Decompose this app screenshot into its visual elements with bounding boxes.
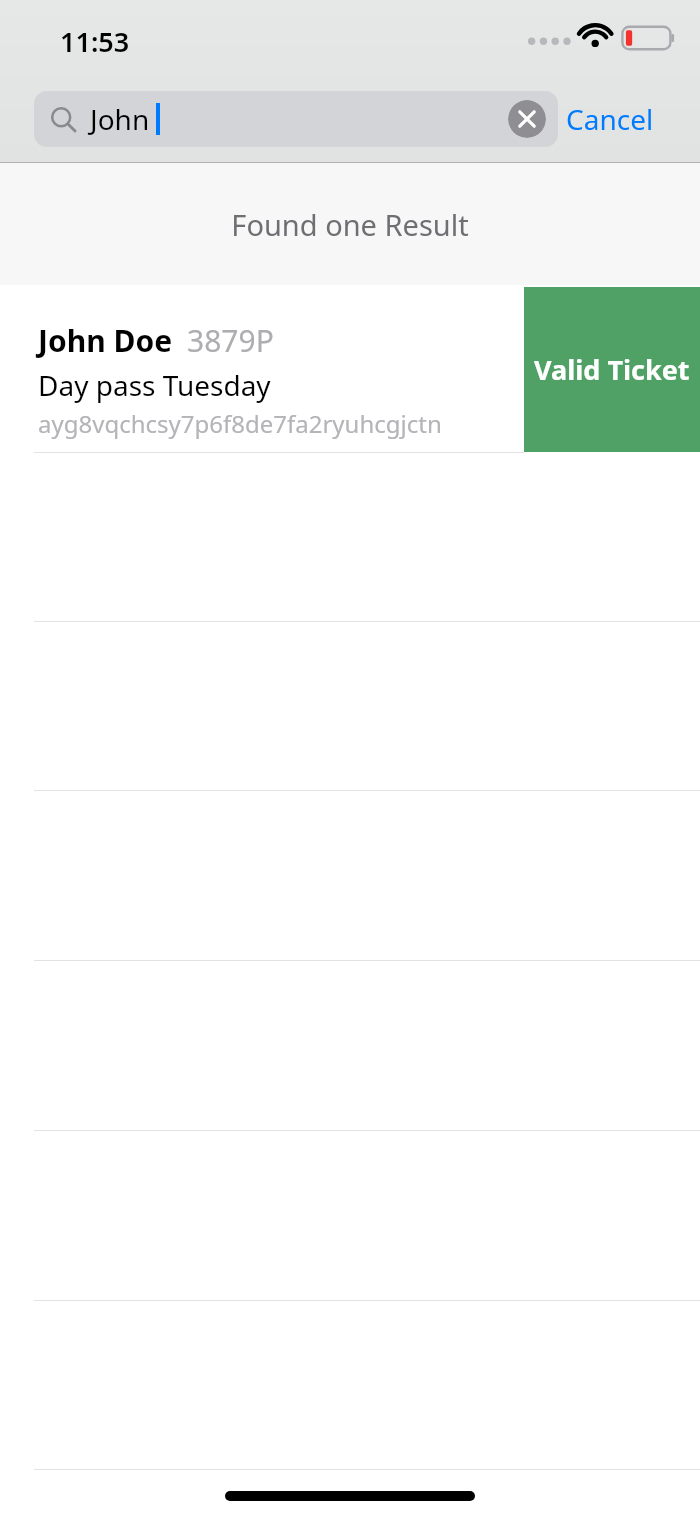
button[interactable]: John [34, 91, 558, 147]
staticText: ayg8vqchcsy7p6f8de7fa2ryuhcgjctn [38, 407, 442, 440]
button[interactable]: Cancel [566, 94, 686, 144]
staticText: John [90, 100, 150, 138]
staticText: 11:53 [60, 23, 130, 60]
staticText: Cancel [566, 100, 654, 138]
staticText: John Doe [38, 320, 173, 361]
button[interactable]: Valid Ticket [524, 287, 700, 452]
staticText: Day pass Tuesday [38, 366, 271, 404]
staticText: 3879P [187, 320, 274, 361]
button[interactable]: John Doe [0, 285, 700, 453]
staticText: Found one Result [0, 205, 700, 244]
staticText: Valid Ticket [534, 351, 690, 388]
button[interactable]: Clear search text [508, 100, 546, 138]
